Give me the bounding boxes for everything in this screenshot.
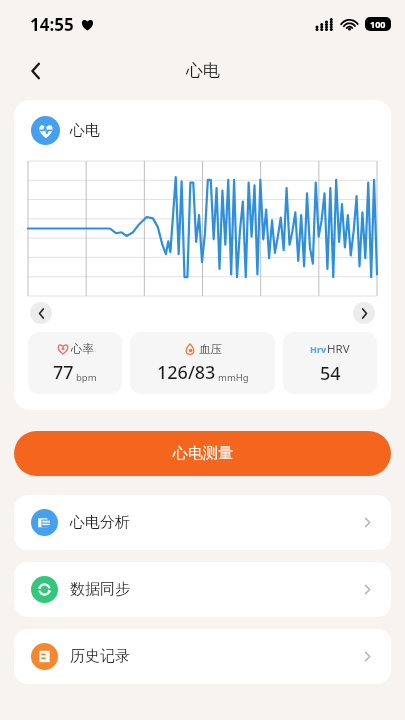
staticText: bpm	[76, 371, 97, 384]
staticText: 血压	[199, 342, 222, 356]
staticText: 心率	[71, 342, 94, 356]
staticText: 14:55	[30, 13, 74, 36]
button[interactable]: Previous	[30, 302, 52, 324]
button[interactable]: 历史记录	[14, 629, 391, 684]
button[interactable]: Hrv	[283, 332, 377, 394]
button[interactable]: 心电测量	[14, 431, 391, 476]
staticText: 100	[370, 18, 386, 30]
staticText: 54	[320, 361, 341, 386]
staticText: 心电	[70, 121, 100, 140]
staticText: HRV	[327, 341, 350, 357]
staticText: Hrv	[310, 343, 327, 355]
staticText: 心电测量	[173, 444, 233, 463]
button[interactable]: 数据同步	[14, 562, 391, 617]
staticText: 历史记录	[70, 647, 130, 666]
staticText: mmHg	[218, 371, 249, 384]
button[interactable]: 心电分析	[14, 495, 391, 550]
staticText: 心电分析	[70, 513, 130, 532]
button[interactable]: Next	[353, 302, 375, 324]
staticText: 数据同步	[70, 580, 130, 599]
button[interactable]: 心率	[28, 332, 122, 394]
staticText: 77	[53, 360, 74, 385]
staticText: 心电	[186, 60, 220, 81]
button[interactable]: 血压	[130, 332, 275, 394]
button[interactable]: Back	[18, 53, 54, 89]
staticText: 126/83	[157, 360, 216, 385]
